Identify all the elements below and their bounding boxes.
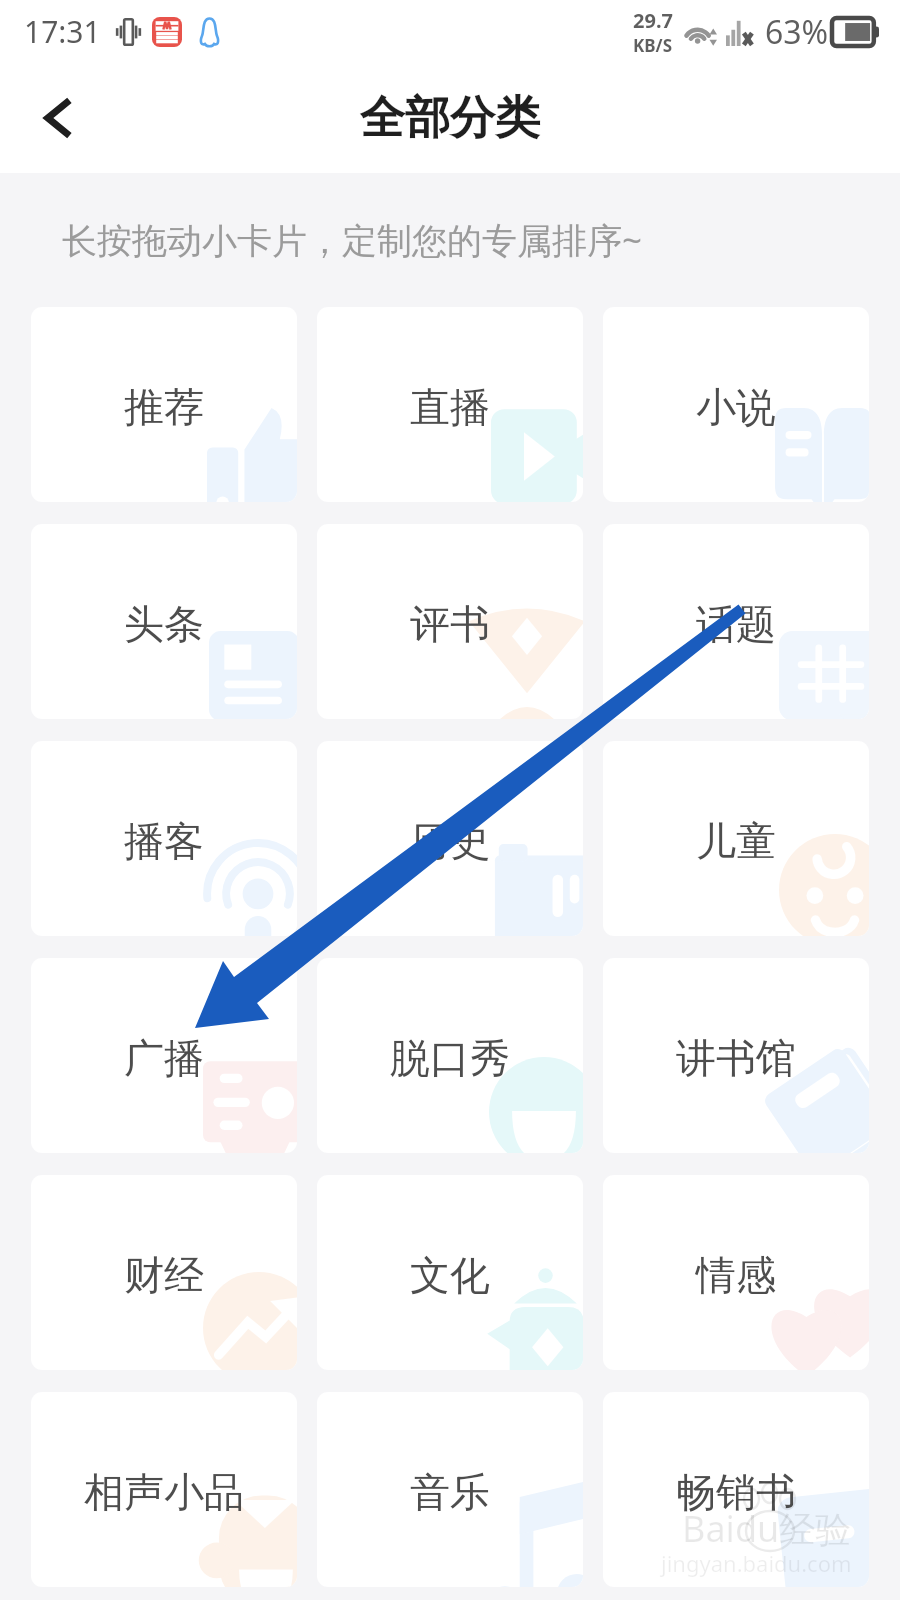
button[interactable]: 话题 bbox=[603, 524, 869, 719]
button[interactable]: 播客 bbox=[31, 741, 297, 936]
staticText: 文化 bbox=[410, 1250, 490, 1300]
staticText: jingyan.baidu.com bbox=[661, 1548, 852, 1578]
staticText: 评书 bbox=[410, 599, 490, 649]
staticText: 头条 bbox=[124, 599, 204, 649]
button[interactable]: 脱口秀 bbox=[317, 958, 583, 1153]
staticText: 音乐 bbox=[410, 1467, 490, 1517]
staticText: 63% bbox=[765, 10, 829, 54]
staticText: 话题 bbox=[696, 599, 776, 649]
button[interactable]: 畅销书 bbox=[603, 1392, 869, 1587]
staticText: 播客 bbox=[124, 816, 204, 866]
staticText: 畅销书 bbox=[676, 1467, 796, 1517]
button[interactable]: 广播 bbox=[31, 958, 297, 1153]
staticText: 历史 bbox=[410, 816, 490, 866]
button[interactable]: 推荐 bbox=[31, 307, 297, 502]
staticText: 推荐 bbox=[124, 382, 204, 432]
staticText: 长按拖动小卡片，定制您的专属排序~ bbox=[62, 216, 643, 264]
button[interactable]: 音乐 bbox=[317, 1392, 583, 1587]
staticText: 29.7 bbox=[633, 7, 673, 34]
button[interactable]: 情感 bbox=[603, 1175, 869, 1370]
staticText: 讲书馆 bbox=[676, 1033, 796, 1083]
staticText: Baidu经验 bbox=[682, 1504, 852, 1553]
staticText: 广播 bbox=[124, 1033, 204, 1083]
staticText: 儿童 bbox=[696, 816, 776, 866]
button[interactable]: 文化 bbox=[317, 1175, 583, 1370]
staticText: 小说 bbox=[696, 382, 776, 432]
staticText: 财经 bbox=[124, 1250, 204, 1300]
button[interactable]: 财经 bbox=[31, 1175, 297, 1370]
staticText: 情感 bbox=[696, 1250, 776, 1300]
button[interactable]: 相声小品 bbox=[31, 1392, 297, 1587]
button[interactable]: 头条 bbox=[31, 524, 297, 719]
button[interactable]: 评书 bbox=[317, 524, 583, 719]
staticText: 17:31 bbox=[24, 11, 101, 52]
button[interactable]: Back bbox=[22, 81, 96, 155]
staticText: 脱口秀 bbox=[390, 1033, 510, 1083]
staticText: 直播 bbox=[410, 382, 490, 432]
staticText: 相声小品 bbox=[84, 1467, 244, 1517]
staticText: KB/S bbox=[633, 34, 673, 57]
staticText: 全部分类 bbox=[360, 90, 540, 147]
button[interactable]: 小说 bbox=[603, 307, 869, 502]
button[interactable]: 直播 bbox=[317, 307, 583, 502]
button[interactable]: 儿童 bbox=[603, 741, 869, 936]
button[interactable]: 讲书馆 bbox=[603, 958, 869, 1153]
button[interactable]: 历史 bbox=[317, 741, 583, 936]
